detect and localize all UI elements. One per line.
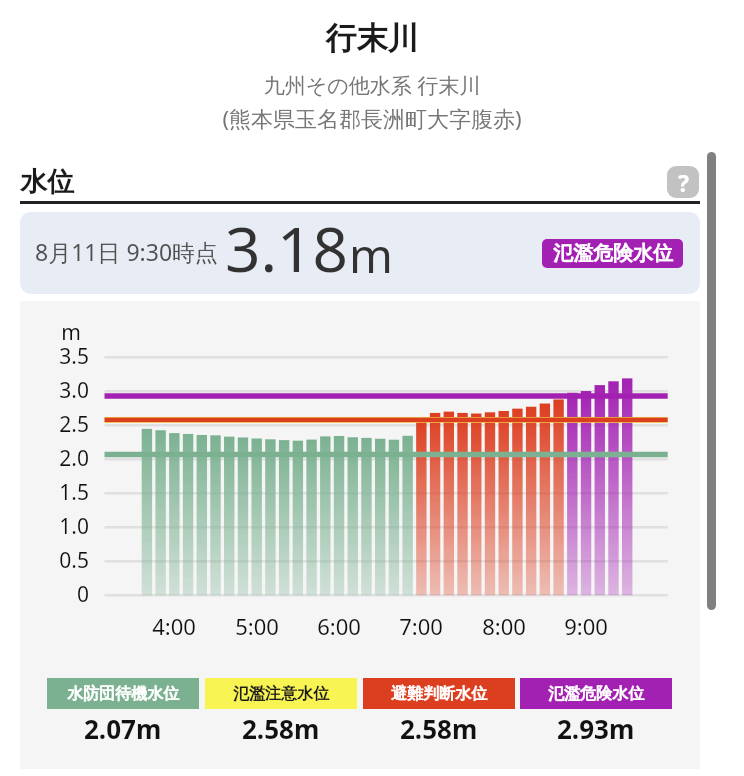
staticText: 行末川 [0,19,744,58]
staticText: 1.5 [28,478,89,507]
staticText: 0 [28,580,89,609]
staticText: 避難判断水位 [391,684,487,704]
staticText: 2.93m [557,711,635,746]
staticText: 9:00 [546,611,626,641]
button[interactable]: 氾濫危険水位 [520,678,672,709]
button[interactable]: ヘルプ [667,166,699,198]
staticText: ? [678,167,689,198]
staticText: (熊本県玉名郡長洲町大字腹赤) [0,103,744,133]
staticText: 氾濫危険水位 [548,684,644,704]
staticText: 九州その他水系 行末川 [0,71,744,100]
staticText: 8月11日 9:30時点 [35,236,219,267]
staticText: 2.5 [28,410,89,439]
button[interactable]: 氾濫注意水位 [205,678,357,709]
staticText: 7:00 [381,611,461,641]
staticText: 水位 [20,165,74,199]
staticText: 水防団待機水位 [67,684,179,704]
staticText: 3.18 [225,212,349,288]
staticText: 0.5 [28,546,89,575]
staticText: 2.07m [84,711,162,746]
staticText: 4:00 [134,611,214,641]
staticText: 2.58m [400,711,478,746]
button[interactable]: 8月11日 9:30時点 [20,212,700,294]
staticText: 5:00 [217,611,297,641]
staticText: 2.0 [28,444,89,473]
staticText: 6:00 [299,611,379,641]
staticText: 氾濫注意水位 [233,684,329,704]
staticText: 氾濫危険水位 [553,241,673,266]
button[interactable]: 避難判断水位 [363,678,515,709]
staticText: m [35,318,107,347]
staticText: 8:00 [464,611,544,641]
staticText: 3.5 [28,342,89,371]
staticText: m [349,223,393,287]
staticText: 3.0 [28,376,89,405]
staticText: 1.0 [28,512,89,541]
staticText: 2.58m [242,711,320,746]
button[interactable]: 水防団待機水位 [47,678,199,709]
